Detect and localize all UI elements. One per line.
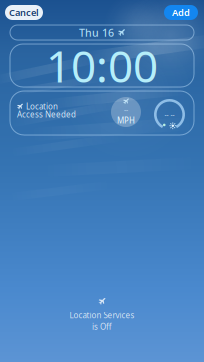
staticText: Location Services	[69, 310, 134, 320]
button[interactable]: Cancel	[5, 5, 43, 20]
staticText: Location	[26, 101, 58, 112]
button[interactable]: Add	[164, 5, 198, 20]
staticText: Add	[172, 6, 190, 19]
staticText: is Off	[92, 321, 112, 332]
staticText: 10:00	[46, 36, 158, 95]
staticText: Thu 16	[79, 25, 114, 40]
staticText: -- --	[164, 110, 174, 119]
staticText: Access Needed	[17, 109, 76, 120]
staticText: Cancel	[9, 6, 39, 19]
staticText: MPH	[117, 115, 135, 126]
staticText: --	[124, 105, 128, 114]
